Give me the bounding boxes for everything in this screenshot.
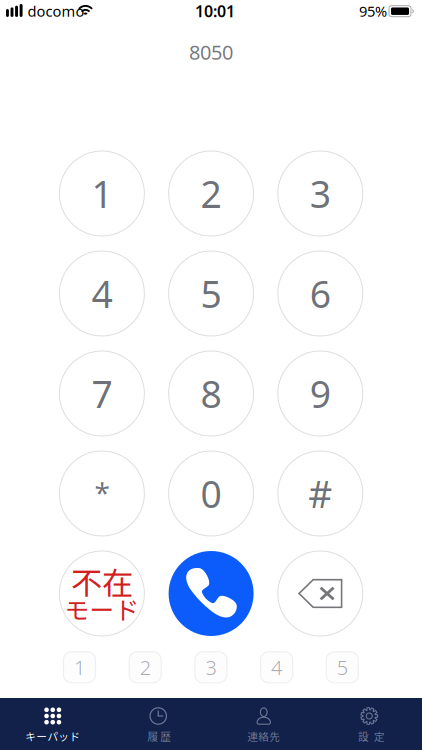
staticText: 4: [91, 269, 112, 318]
button[interactable]: 連絡先: [211, 698, 316, 750]
staticText: 1: [91, 169, 112, 218]
button[interactable]: 7: [59, 351, 144, 436]
staticText: docomo: [27, 1, 84, 21]
button[interactable]: 3: [278, 151, 363, 236]
button[interactable]: Call: [169, 551, 254, 636]
staticText: 0: [201, 469, 222, 518]
staticText: 設定: [358, 728, 385, 744]
button[interactable]: キーパッド: [0, 698, 105, 750]
staticText: 10:01: [195, 0, 235, 22]
staticText: 3: [310, 169, 331, 218]
staticText: 3: [205, 654, 216, 681]
button[interactable]: 3: [195, 652, 227, 683]
staticText: 連絡先: [247, 728, 280, 744]
staticText: 不在: [71, 558, 133, 604]
button[interactable]: 2: [129, 652, 161, 683]
staticText: 1: [74, 654, 85, 681]
staticText: 8: [201, 369, 222, 418]
staticText: 9: [310, 369, 331, 418]
button[interactable]: 6: [278, 251, 363, 336]
button[interactable]: #: [278, 451, 363, 536]
staticText: 7: [91, 369, 112, 418]
button[interactable]: 5: [326, 652, 358, 683]
staticText: 2: [201, 169, 222, 218]
staticText: モード: [64, 591, 139, 627]
button[interactable]: 0: [169, 451, 254, 536]
staticText: 95%: [359, 1, 387, 21]
staticText: 8050: [189, 39, 233, 65]
button[interactable]: 1: [63, 652, 95, 683]
staticText: 履歴: [147, 728, 171, 744]
staticText: 5: [337, 654, 348, 681]
button[interactable]: Delete: [278, 551, 363, 636]
staticText: 6: [310, 269, 331, 318]
staticText: 4: [271, 654, 282, 681]
staticText: キーパッド: [25, 728, 80, 744]
staticText: 5: [201, 269, 222, 318]
staticText: 2: [140, 654, 151, 681]
button[interactable]: 9: [278, 351, 363, 436]
button[interactable]: 設定: [316, 698, 422, 750]
button[interactable]: 4: [261, 652, 293, 683]
staticText: *: [94, 474, 109, 511]
button[interactable]: 履歴: [105, 698, 211, 750]
button[interactable]: 8: [169, 351, 254, 436]
button[interactable]: 1: [59, 151, 144, 236]
button[interactable]: 4: [59, 251, 144, 336]
button[interactable]: *: [59, 451, 144, 536]
button[interactable]: 不在: [59, 551, 144, 636]
button[interactable]: 5: [169, 251, 254, 336]
button[interactable]: 2: [169, 151, 254, 236]
staticText: #: [308, 469, 332, 518]
